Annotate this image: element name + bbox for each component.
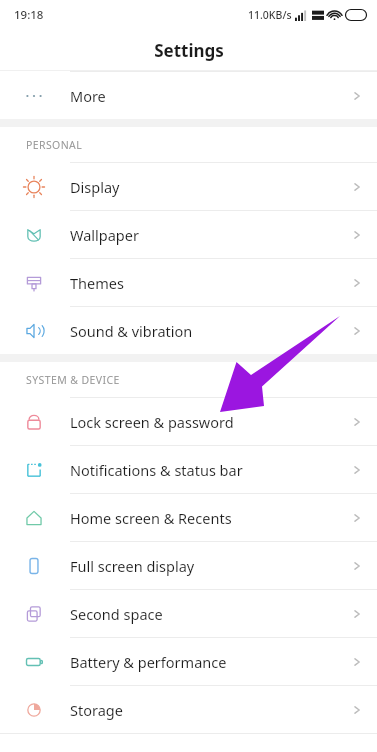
staticText: SYSTEM & DEVICE: [26, 373, 120, 387]
staticText: Home screen & Recents: [70, 508, 232, 528]
staticText: 19:18: [14, 7, 44, 23]
staticText: PERSONAL: [26, 138, 83, 152]
staticText: Notifications & status bar: [70, 460, 243, 480]
button[interactable]: Sound & vibration: [0, 306, 377, 354]
button[interactable]: Storage: [0, 685, 377, 733]
staticText: Storage: [70, 700, 123, 720]
staticText: Themes: [70, 273, 124, 293]
button[interactable]: Themes: [0, 258, 377, 306]
button[interactable]: Full screen display: [0, 541, 377, 589]
staticText: Lock screen & password: [70, 412, 234, 432]
staticText: Display: [70, 177, 120, 197]
button[interactable]: Lock screen & password: [0, 397, 377, 445]
staticText: More: [70, 86, 106, 106]
staticText: 11.0KB/s: [248, 8, 292, 22]
staticText: Sound & vibration: [70, 321, 193, 341]
staticText: Wallpaper: [70, 225, 139, 245]
button[interactable]: Home screen & Recents: [0, 493, 377, 541]
staticText: Battery & performance: [70, 652, 227, 672]
button[interactable]: Second space: [0, 589, 377, 637]
staticText: Second space: [70, 604, 163, 624]
staticText: Settings: [154, 39, 224, 62]
button[interactable]: Wallpaper: [0, 210, 377, 258]
button[interactable]: Battery & performance: [0, 637, 377, 685]
button[interactable]: More: [0, 71, 377, 119]
staticText: Full screen display: [70, 556, 195, 576]
button[interactable]: Notifications & status bar: [0, 445, 377, 493]
button[interactable]: Display: [0, 162, 377, 210]
